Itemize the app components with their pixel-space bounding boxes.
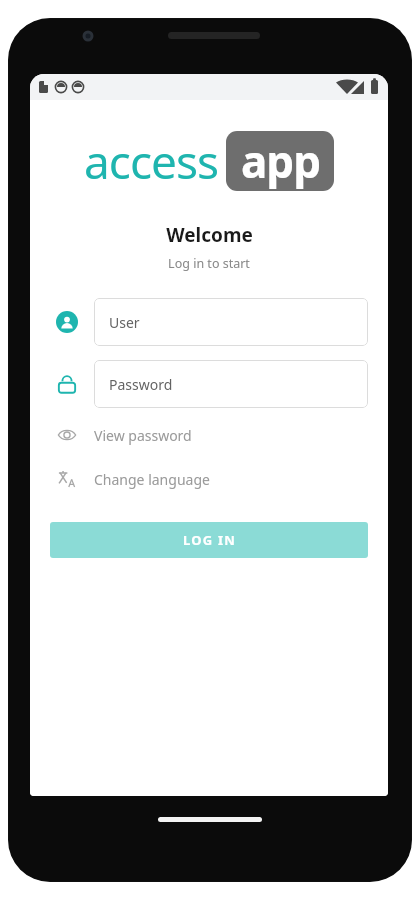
button[interactable]: User xyxy=(94,298,368,346)
staticText: View password xyxy=(94,426,192,445)
button[interactable]: View password xyxy=(50,418,368,452)
staticText: LOG IN xyxy=(183,531,236,549)
staticText: Change language xyxy=(94,470,210,489)
button[interactable]: Password xyxy=(94,360,368,408)
staticText: Welcome xyxy=(166,222,253,248)
staticText: Log in to start xyxy=(168,255,250,272)
staticText: access xyxy=(84,130,218,192)
button[interactable]: LOG IN xyxy=(50,522,368,558)
staticText: Password xyxy=(109,375,173,394)
staticText: User xyxy=(109,313,140,332)
button[interactable]: Change language xyxy=(50,462,368,496)
staticText: app xyxy=(241,131,320,191)
